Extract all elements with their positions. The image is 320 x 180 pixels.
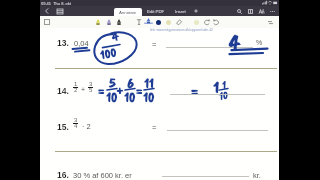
- staticText: +: [116, 82, 124, 100]
- staticText: =: [98, 81, 104, 100]
- staticText: 100: [99, 45, 118, 63]
- staticText: 3: [89, 81, 93, 88]
- button[interactable]: Search: [234, 6, 245, 16]
- staticText: 2: [74, 87, 78, 94]
- button[interactable]: Add tab: [191, 6, 201, 16]
- button[interactable]: Eraser: [173, 16, 184, 28]
- staticText: 10: [219, 89, 228, 103]
- staticText: 1: [74, 81, 78, 88]
- staticText: 14.: [57, 86, 69, 96]
- staticText: =: [152, 123, 157, 131]
- staticText: +: [81, 86, 86, 94]
- staticText: 15.: [57, 122, 69, 132]
- staticText: 4: [110, 28, 120, 45]
- button[interactable]: Annotate: [114, 8, 142, 17]
- button[interactable]: Pencil: [103, 16, 114, 28]
- staticText: 16.: [57, 170, 69, 180]
- button[interactable]: Colour: [163, 16, 174, 28]
- staticText: 10: [124, 89, 136, 107]
- staticText: 10: [106, 89, 118, 107]
- button[interactable]: Page view: [245, 6, 256, 16]
- staticText: =: [152, 40, 157, 48]
- button[interactable]: Edit PDF: [142, 7, 170, 16]
- staticText: 4: [74, 123, 78, 130]
- button[interactable]: Highlighter: [92, 16, 103, 28]
- button[interactable]: Read aloud: [256, 6, 267, 16]
- staticText: 6: [127, 75, 134, 93]
- staticText: 4: [229, 30, 239, 56]
- staticText: %: [256, 39, 263, 47]
- button[interactable]: Back: [40, 6, 53, 16]
- button[interactable]: Pen: [143, 16, 154, 28]
- staticText: Insert: [175, 9, 186, 14]
- staticText: 1: [213, 77, 219, 98]
- button[interactable]: Select: [41, 16, 52, 28]
- button[interactable]: Thumbnails: [53, 6, 66, 16]
- staticText: 30 % af 600 kr. er: [73, 171, 132, 179]
- staticText: 13.: [57, 38, 69, 48]
- staticText: 0,04: [74, 39, 89, 47]
- staticText: 09.41 Thu 8. okt: [41, 1, 71, 5]
- button[interactable]: Page layout: [265, 16, 276, 28]
- button[interactable]: Redo: [210, 16, 221, 28]
- staticText: 10: [143, 89, 155, 107]
- button[interactable]: Text box: [133, 16, 144, 28]
- staticText: 3: [74, 117, 78, 124]
- button[interactable]: Colour: [153, 16, 164, 28]
- button[interactable]: Undo: [201, 16, 212, 28]
- button[interactable]: More options: [267, 6, 278, 16]
- staticText: 11: [144, 75, 154, 93]
- staticText: · 2: [82, 122, 91, 130]
- staticText: =: [191, 80, 198, 101]
- staticText: 5: [89, 87, 93, 94]
- staticText: Edit PDF: [147, 9, 165, 14]
- staticText: kr.: [253, 171, 261, 179]
- staticText: =: [136, 81, 142, 100]
- staticText: link: www.mitgymnasium.dk/opgaver/side-4…: [150, 28, 213, 32]
- button[interactable]: Insert: [170, 7, 191, 16]
- button[interactable]: Colour: [191, 16, 202, 28]
- staticText: 5: [109, 75, 116, 93]
- staticText: 1: [222, 78, 226, 92]
- staticText: Annotate: [119, 10, 137, 15]
- button[interactable]: Marker: [113, 16, 124, 28]
